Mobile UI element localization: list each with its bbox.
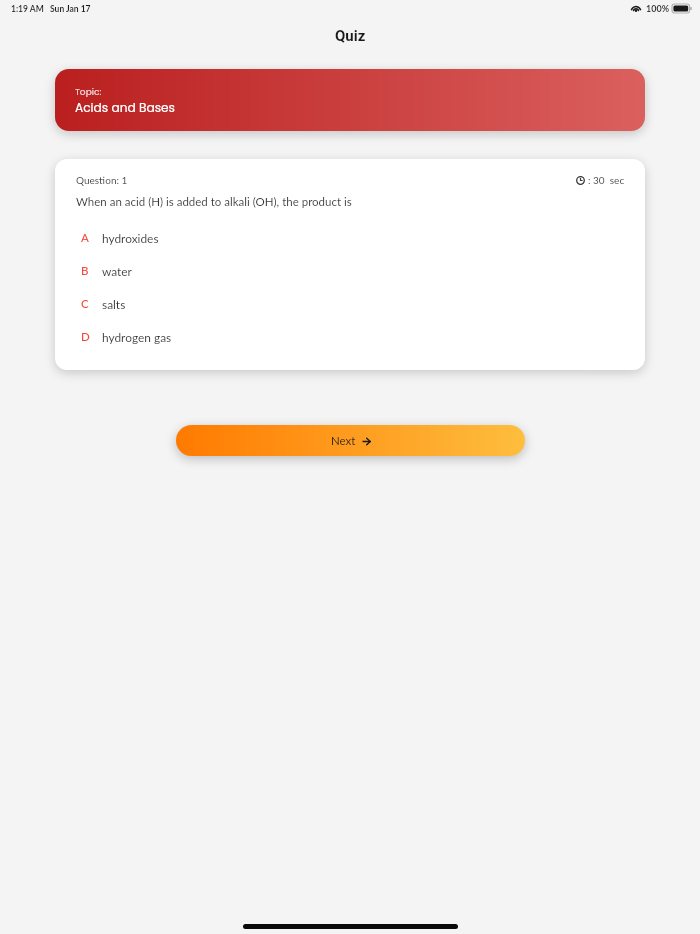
staticText: Quiz — [335, 27, 366, 45]
button[interactable]: C — [76, 287, 625, 320]
staticText: Question: 1 — [76, 174, 128, 186]
staticText: : 30 sec — [588, 174, 625, 186]
staticText: hydrogen gas — [102, 330, 172, 344]
staticText: salts — [102, 297, 126, 311]
button[interactable]: Topic: — [55, 69, 645, 131]
staticText: 100% — [646, 3, 670, 14]
button[interactable]: D — [76, 320, 625, 353]
staticText: Topic: — [75, 86, 102, 99]
button[interactable]: A — [76, 221, 625, 254]
staticText: A — [81, 231, 89, 245]
staticText: B — [81, 264, 89, 278]
button[interactable]: B — [76, 254, 625, 287]
staticText: hydroxides — [102, 231, 159, 245]
button[interactable]: Next — [176, 425, 525, 456]
staticText: Acids and Bases — [75, 99, 175, 116]
staticText: Next — [331, 434, 356, 448]
staticText: 1:19 AM — [11, 4, 44, 14]
staticText: When an acid (H) is added to alkali (OH)… — [76, 195, 352, 209]
staticText: D — [81, 330, 90, 344]
staticText: water — [102, 264, 132, 278]
staticText: Sun Jan 17 — [50, 4, 91, 14]
staticText: C — [81, 297, 89, 311]
